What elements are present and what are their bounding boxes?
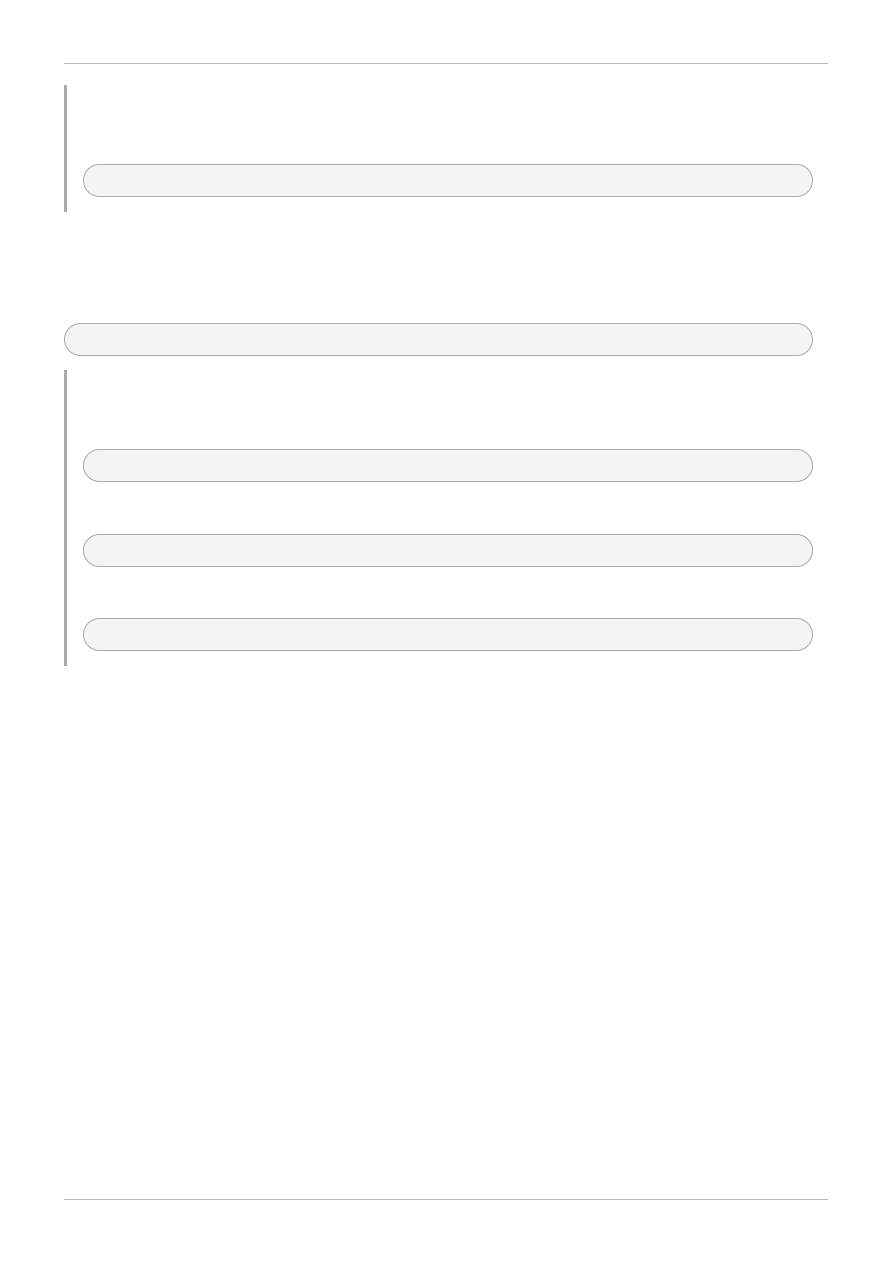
button[interactable]: Content row <box>83 449 813 482</box>
button[interactable]: Content row <box>83 534 813 567</box>
button[interactable]: Content row <box>64 323 813 356</box>
button[interactable]: Content row <box>83 618 813 651</box>
button[interactable]: Content row <box>83 164 813 197</box>
